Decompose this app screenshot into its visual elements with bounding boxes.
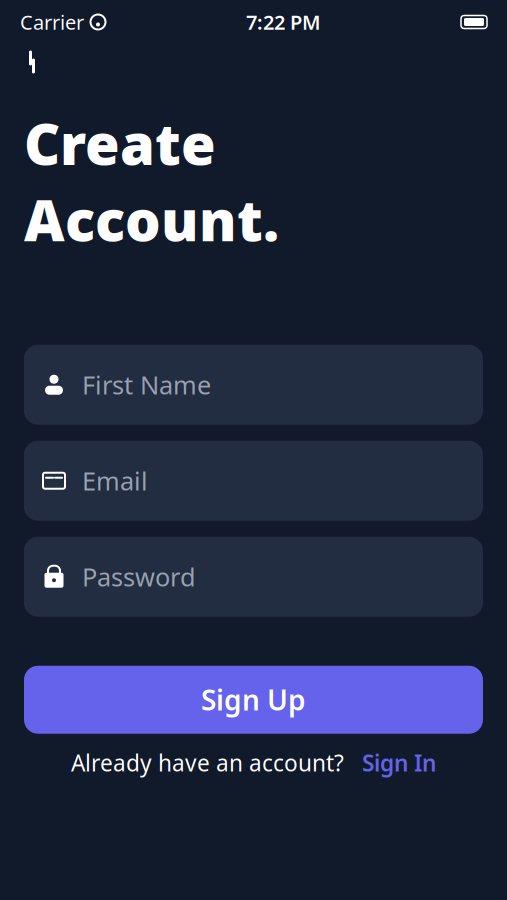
button[interactable]: Email (24, 441, 483, 521)
staticText: Already have an account? (71, 748, 344, 778)
button[interactable]: Sign In (362, 748, 436, 778)
button[interactable]: Password (24, 537, 483, 617)
staticText: Sign In (362, 748, 436, 778)
staticText: Password (82, 560, 196, 593)
staticText: 7:22 PM (246, 9, 321, 35)
staticText: Create (24, 106, 216, 180)
staticText: Sign Up (201, 681, 306, 718)
staticText: First Name (82, 368, 211, 401)
staticText: Carrier (20, 9, 84, 35)
button[interactable]: First Name (24, 345, 483, 425)
button[interactable]: Back (10, 42, 54, 82)
staticText: Account. (24, 182, 279, 257)
button[interactable]: Sign Up (24, 666, 483, 734)
staticText: Email (82, 464, 148, 497)
